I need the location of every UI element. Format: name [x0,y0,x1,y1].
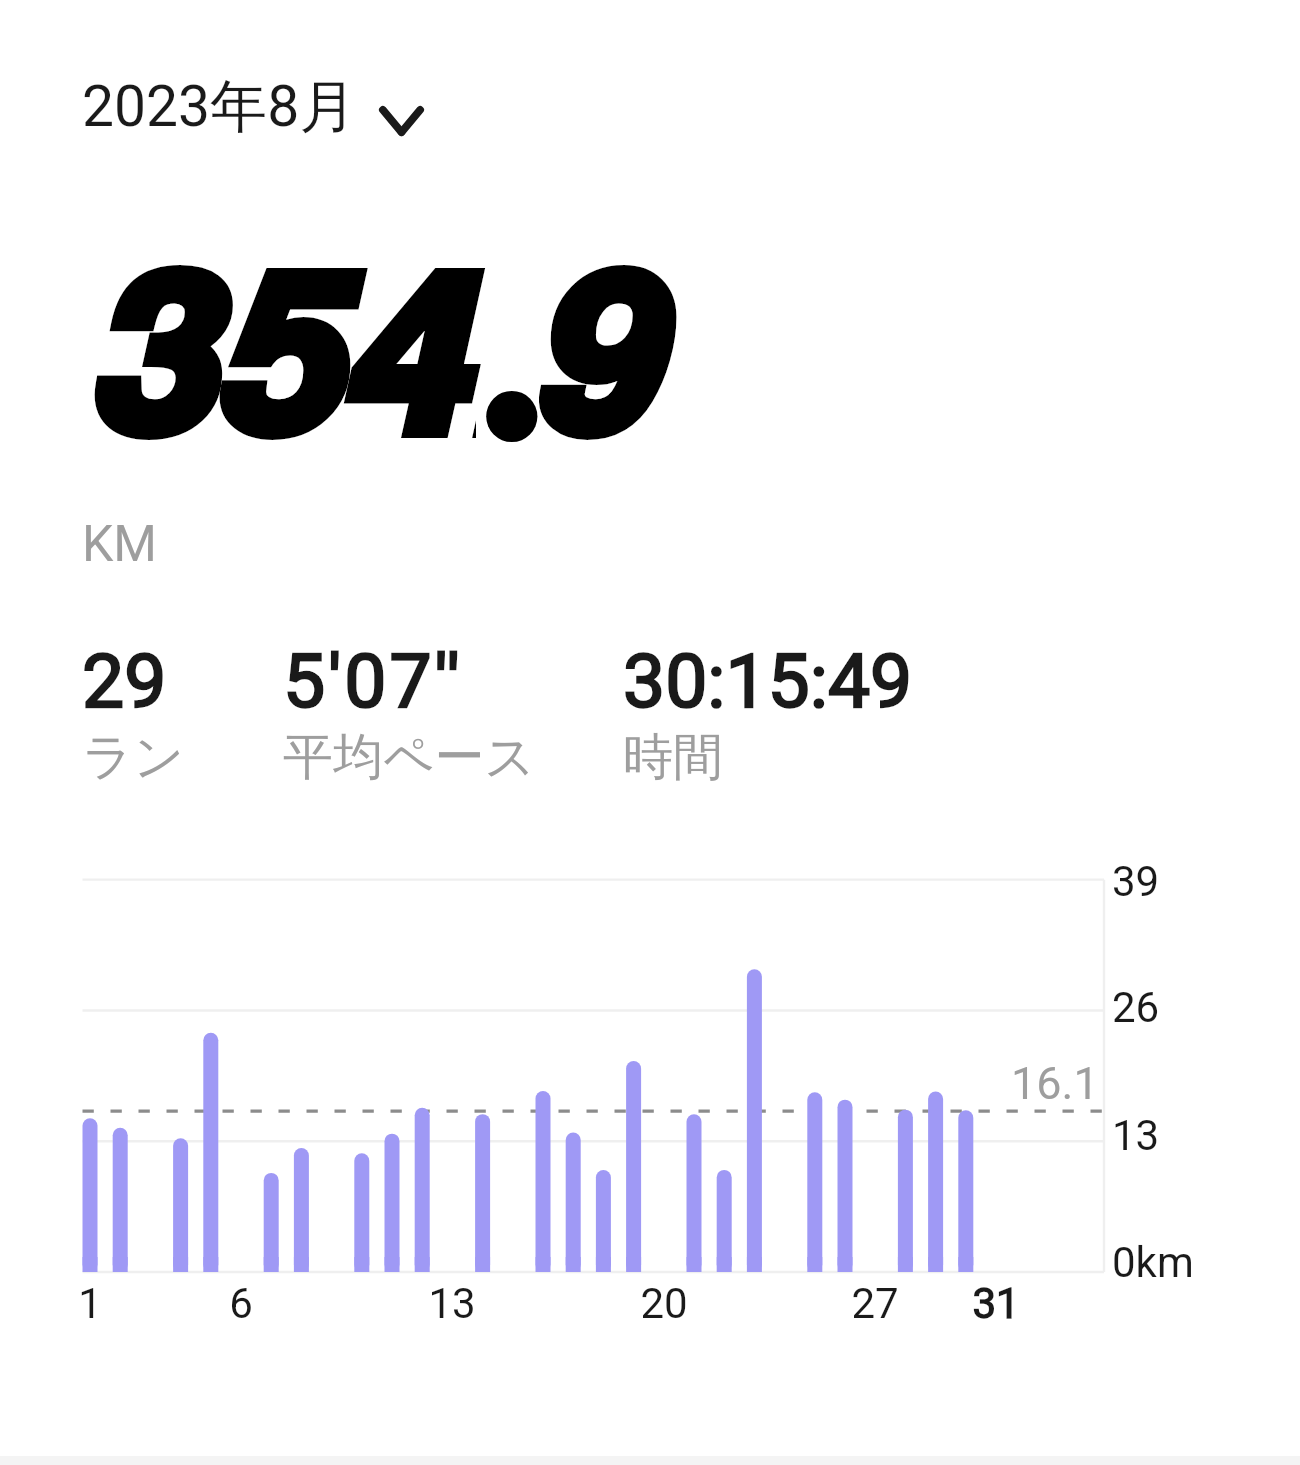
staticText: 5'07'' [283,637,463,725]
button[interactable]: 29 [82,637,185,788]
staticText: 6 [191,1279,291,1328]
staticText: 0km [1112,1238,1194,1287]
staticText: 16.1 [1011,1057,1099,1110]
other: Change month [379,106,424,136]
staticText: 29 [82,637,167,725]
staticText: 31 [946,1279,1046,1328]
button[interactable]: 5'07'' [283,637,536,788]
staticText: 1 [40,1279,140,1328]
button[interactable]: 2023年8月 [82,71,424,143]
staticText: 39 [1112,857,1160,906]
button[interactable]: 30:15:49 [623,637,913,788]
staticText: 時間 [623,726,723,789]
staticText: 2023年8月 [82,71,357,143]
staticText: ラン [82,726,185,789]
staticText: 354.9 [95,184,666,499]
staticText: 27 [825,1279,925,1328]
staticText: 20 [614,1279,714,1328]
staticText: 13 [402,1279,502,1328]
staticText: 平均ペース [283,726,536,789]
staticText: 30:15:49 [623,637,913,725]
staticText: 26 [1112,983,1160,1032]
staticText: KM [82,515,158,574]
staticText: 354.9 [95,184,666,499]
staticText: 13 [1112,1111,1160,1160]
